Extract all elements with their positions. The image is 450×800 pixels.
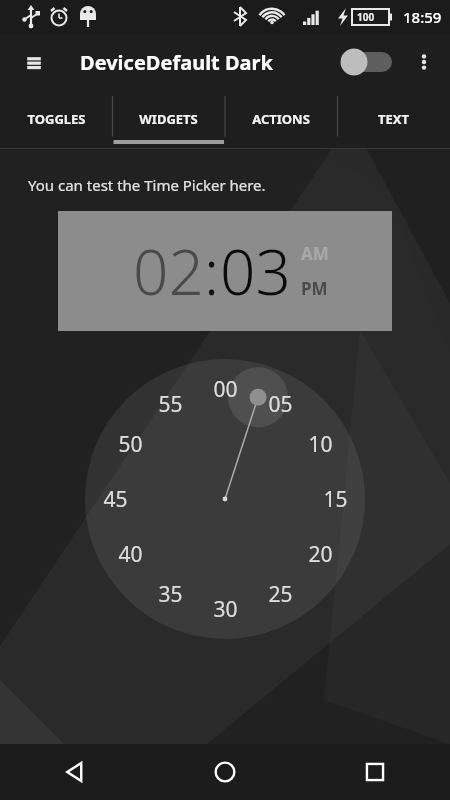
staticText: 05 bbox=[268, 390, 293, 419]
staticText: 25 bbox=[268, 580, 293, 609]
button[interactable]: 02 bbox=[133, 229, 204, 313]
staticText: 18:59 bbox=[403, 7, 442, 27]
staticText: TOGGLES bbox=[27, 110, 86, 128]
staticText: DeviceDefault Dark bbox=[80, 49, 273, 76]
staticText: 20 bbox=[308, 540, 333, 569]
button[interactable]: Minute dial bbox=[85, 359, 365, 639]
button[interactable]: TEXT bbox=[337, 90, 450, 148]
button[interactable]: Open navigation drawer bbox=[14, 42, 54, 82]
staticText: ACTIONS bbox=[252, 110, 310, 128]
button[interactable]: More options bbox=[404, 42, 444, 82]
button[interactable]: ACTIONS bbox=[224, 90, 337, 148]
staticText: 35 bbox=[158, 580, 183, 609]
staticText: You can test the Time Picker here. bbox=[28, 175, 266, 195]
button[interactable]: AM bbox=[301, 242, 329, 265]
staticText: 100 bbox=[357, 10, 375, 24]
staticText: WIDGETS bbox=[139, 110, 198, 128]
staticText: 15 bbox=[323, 485, 348, 514]
button[interactable]: PM bbox=[301, 277, 328, 300]
button[interactable]: Toggle theme bbox=[338, 42, 400, 82]
staticText: 45 bbox=[103, 485, 128, 514]
staticText: 50 bbox=[118, 430, 143, 459]
button[interactable]: Recent apps bbox=[300, 744, 450, 800]
button[interactable]: 03 bbox=[220, 229, 291, 313]
staticText: TEXT bbox=[378, 110, 409, 128]
button[interactable]: Back bbox=[0, 744, 150, 800]
staticText: : bbox=[204, 229, 220, 313]
staticText: 10 bbox=[308, 430, 333, 459]
button[interactable]: WIDGETS bbox=[112, 90, 224, 148]
button[interactable]: Home bbox=[150, 744, 300, 800]
staticText: 00 bbox=[213, 375, 238, 404]
staticText: 30 bbox=[213, 595, 238, 624]
staticText: 55 bbox=[158, 390, 183, 419]
button[interactable]: TOGGLES bbox=[0, 90, 112, 148]
staticText: 40 bbox=[118, 540, 143, 569]
